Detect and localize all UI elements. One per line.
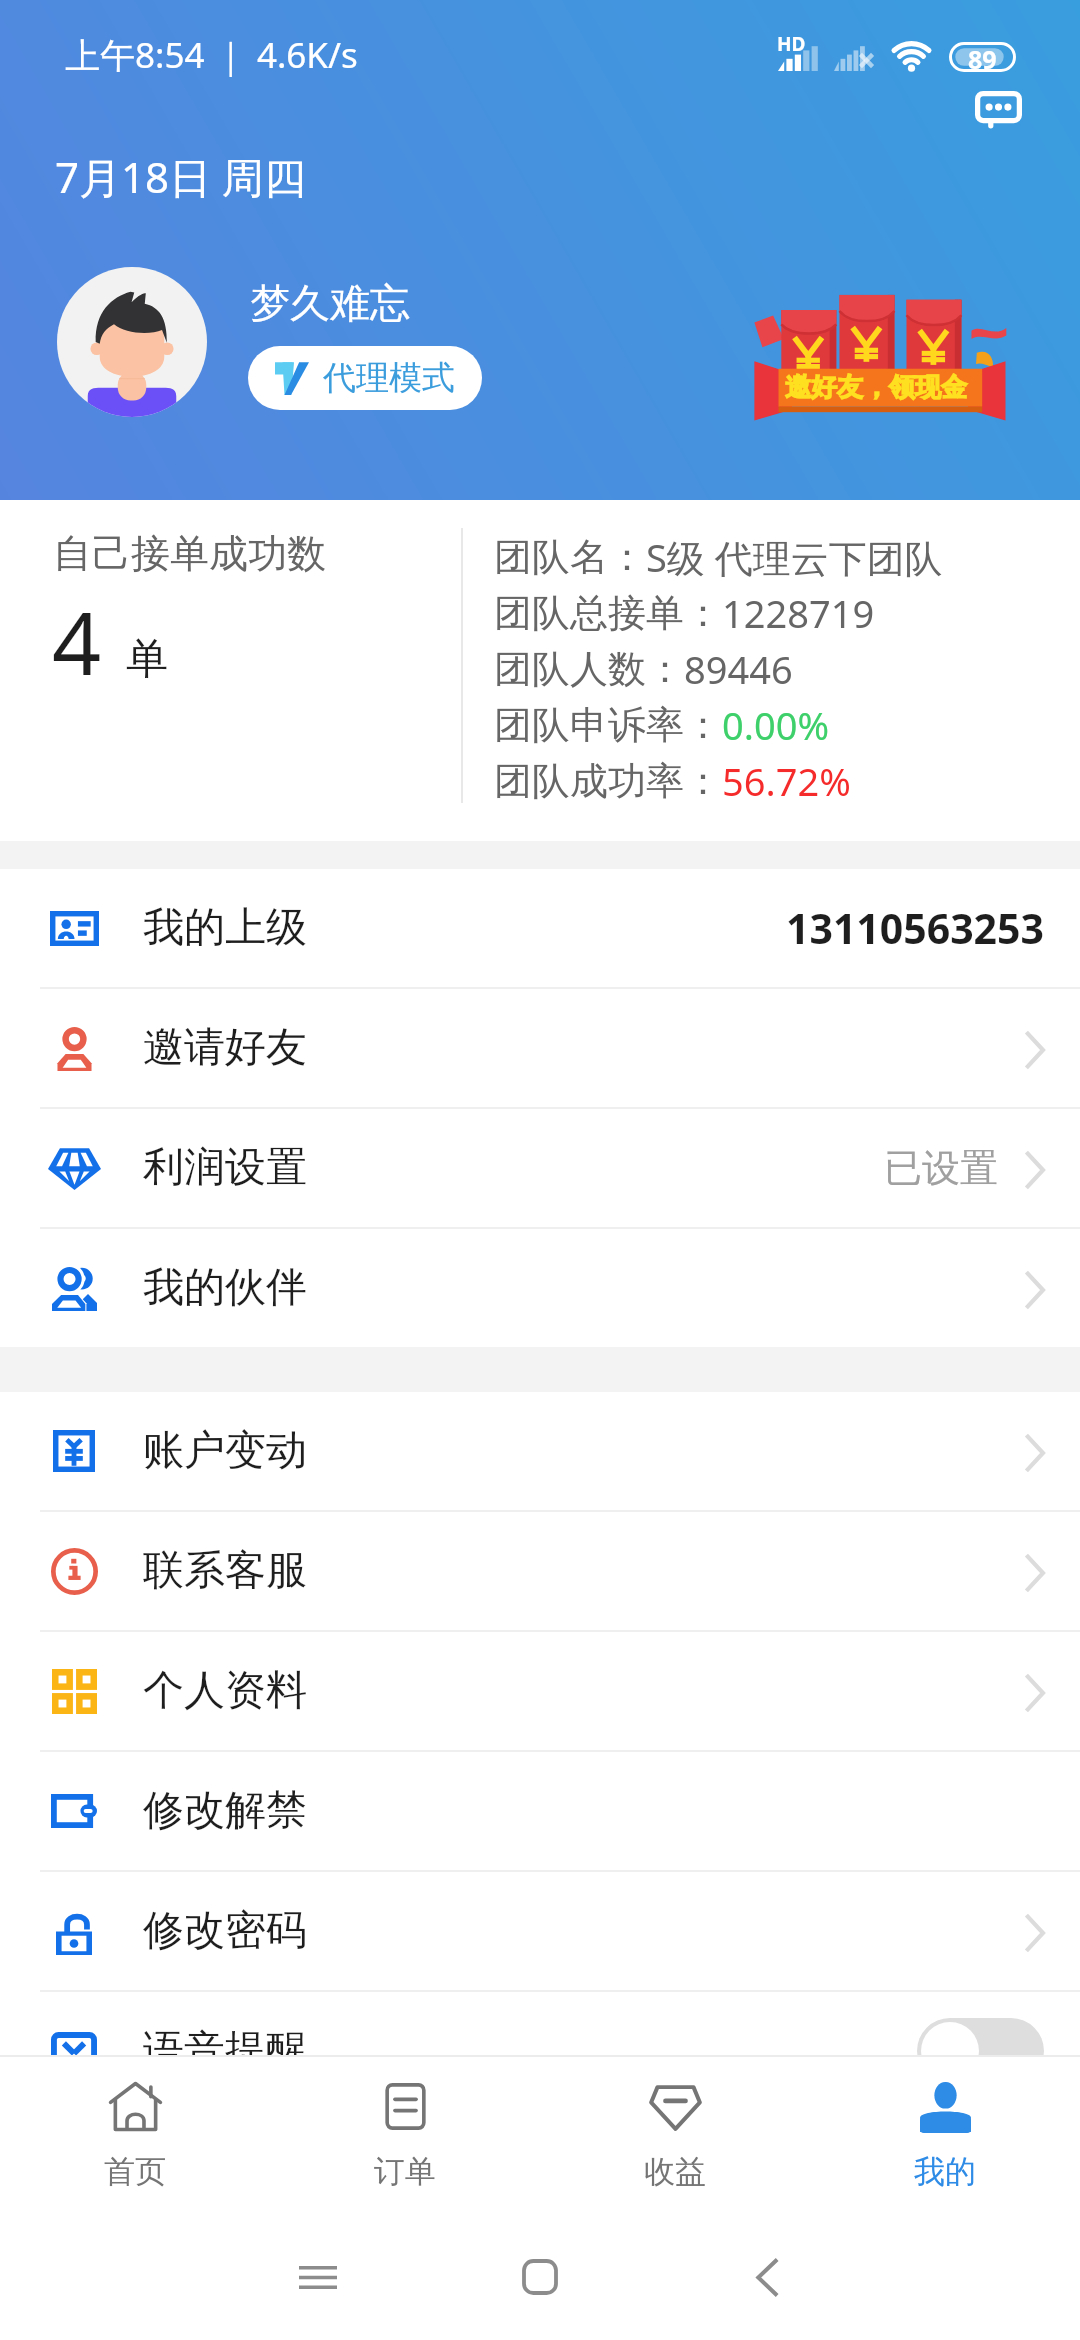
staticText: 邀好友，领现金 bbox=[785, 371, 967, 404]
staticText: 0.00% bbox=[722, 699, 829, 751]
button[interactable]: 邀请好友 bbox=[0, 989, 1080, 1107]
staticText: 单 bbox=[126, 633, 168, 686]
button[interactable]: 我的伙伴 bbox=[0, 1229, 1080, 1347]
staticText: 梦久难忘 bbox=[250, 278, 410, 328]
staticText: 89 bbox=[968, 42, 997, 72]
staticText: 56.72% bbox=[722, 755, 851, 807]
staticText: 团队人数： bbox=[494, 645, 684, 693]
button[interactable]: 收益 bbox=[540, 2057, 810, 2205]
staticText: 自己接单成功数 bbox=[53, 529, 326, 578]
button[interactable]: 订单 bbox=[270, 2057, 540, 2205]
staticText: 修改密码 bbox=[143, 1905, 307, 1957]
button[interactable]: 代理模式 bbox=[248, 346, 482, 410]
button[interactable]: Home bbox=[495, 2232, 585, 2322]
staticText: 89446 bbox=[684, 643, 793, 695]
button[interactable]: 修改解禁 bbox=[0, 1752, 1080, 1870]
button[interactable]: 联系客服 bbox=[0, 1512, 1080, 1630]
staticText: 我的上级 bbox=[143, 902, 307, 954]
staticText: 个人资料 bbox=[143, 1665, 307, 1717]
staticText: 首页 bbox=[104, 2152, 166, 2191]
button[interactable]: 账户变动 bbox=[0, 1392, 1080, 1510]
button[interactable]: Back bbox=[722, 2232, 812, 2322]
staticText: 上午8:54 ｜ 4.6K/s bbox=[65, 31, 358, 79]
staticText: 邀请好友 bbox=[143, 1022, 307, 1074]
staticText: 订单 bbox=[374, 2152, 436, 2191]
staticText: 收益 bbox=[644, 2152, 706, 2191]
staticText: 修改解禁 bbox=[143, 1785, 307, 1837]
staticText: 1228719 bbox=[722, 587, 875, 639]
staticText: 团队申诉率： bbox=[494, 701, 722, 749]
staticText: 联系客服 bbox=[143, 1545, 307, 1597]
button[interactable]: 语音提醒 bbox=[0, 1992, 1080, 2110]
button[interactable]: 消息 bbox=[975, 91, 1022, 133]
button[interactable]: 我的上级 bbox=[0, 869, 1080, 987]
staticText: 语音提醒 bbox=[143, 2025, 307, 2077]
staticText: 代理模式 bbox=[323, 357, 455, 399]
staticText: 7月18日 周四 bbox=[55, 148, 306, 205]
staticText: HD bbox=[777, 31, 806, 57]
button[interactable]: 语音提醒开关 bbox=[917, 2018, 1044, 2084]
staticText: 13110563253 bbox=[786, 900, 1044, 956]
staticText: 团队总接单： bbox=[494, 589, 722, 637]
button[interactable]: Recents bbox=[273, 2232, 363, 2322]
button[interactable]: 个人资料 bbox=[0, 1632, 1080, 1750]
button[interactable]: 我的 bbox=[810, 2057, 1080, 2205]
button[interactable]: 修改密码 bbox=[0, 1872, 1080, 1990]
staticText: 团队名： bbox=[494, 533, 646, 581]
staticText: 我的 bbox=[914, 2152, 976, 2191]
staticText: 我的伙伴 bbox=[143, 1262, 307, 1314]
staticText: S级 代理云下团队 bbox=[646, 531, 943, 583]
staticText: 账户变动 bbox=[143, 1425, 307, 1477]
staticText: 利润设置 bbox=[143, 1142, 307, 1194]
button[interactable]: 利润设置 bbox=[0, 1109, 1080, 1227]
staticText: 4 bbox=[52, 583, 102, 700]
button[interactable]: 首页 bbox=[0, 2057, 270, 2205]
staticText: 已设置 bbox=[884, 1144, 998, 1192]
button[interactable]: 头像 bbox=[57, 267, 207, 417]
button[interactable]: 邀好友，领现金 bbox=[745, 288, 1013, 426]
staticText: 团队成功率： bbox=[494, 757, 722, 805]
